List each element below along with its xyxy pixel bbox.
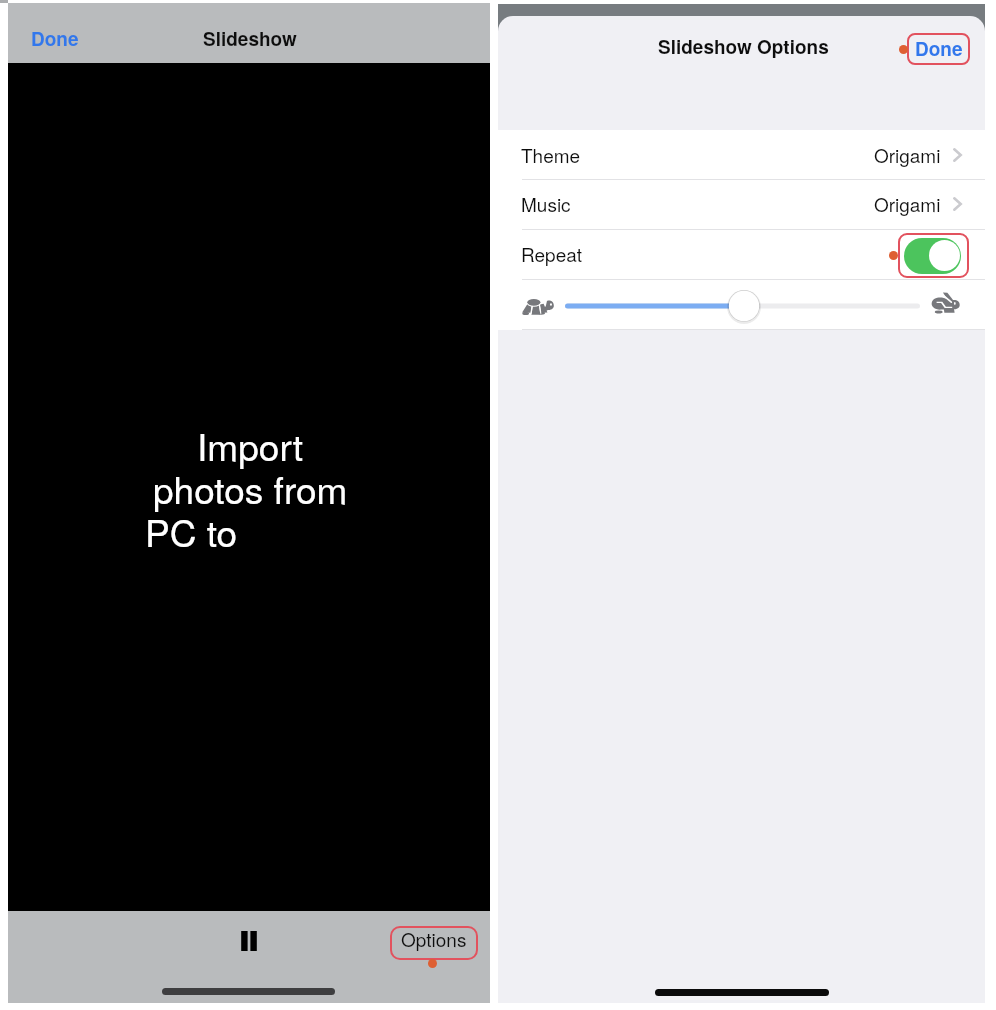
button[interactable]: Options <box>391 922 477 955</box>
staticText: Slideshow <box>203 25 297 52</box>
staticText: Done <box>915 35 963 62</box>
staticText: Slideshow Options <box>658 33 829 60</box>
button[interactable]: Done <box>908 33 969 63</box>
staticText: Music <box>521 190 571 217</box>
staticText: Origami <box>874 141 941 168</box>
button[interactable]: Music <box>498 179 985 229</box>
button[interactable]: Repeat on <box>904 238 961 274</box>
staticText: Options <box>401 925 467 952</box>
button[interactable]: Theme <box>498 130 985 180</box>
staticText: Origami <box>874 190 941 217</box>
staticText: Done <box>31 25 79 52</box>
staticText: Theme <box>521 141 581 168</box>
staticText: PC to <box>145 505 238 558</box>
staticText: Repeat <box>521 240 583 267</box>
button[interactable]: Done <box>27 20 83 57</box>
staticText: Import <box>197 419 304 472</box>
button[interactable]: Pause <box>227 919 271 963</box>
staticText: photos from <box>153 462 348 515</box>
